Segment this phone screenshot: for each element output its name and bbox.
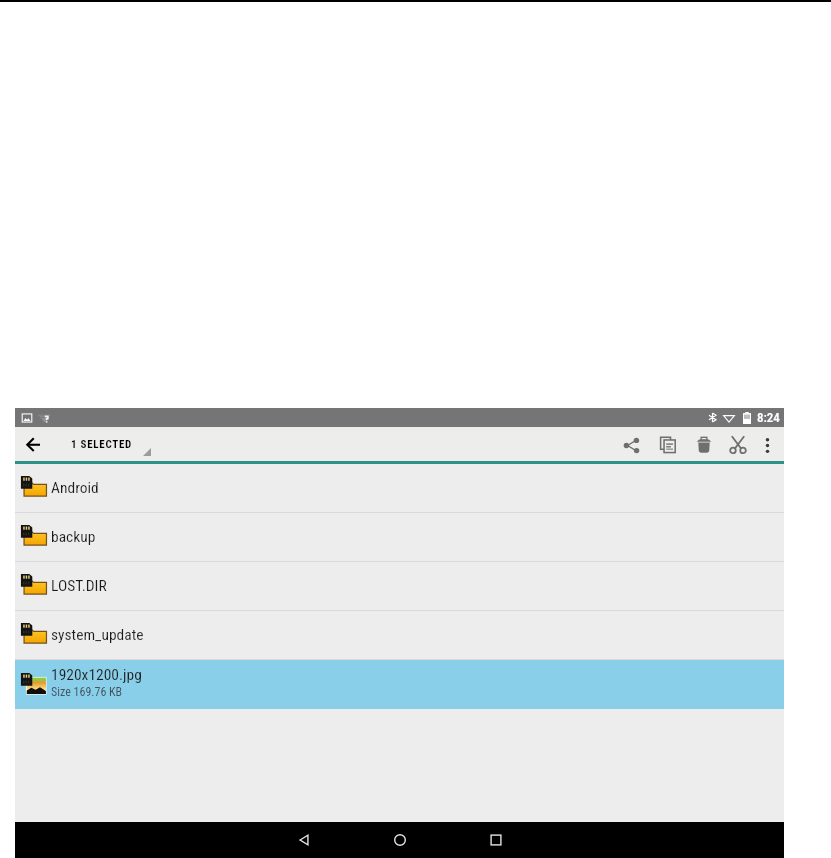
staticText: 1920x1200.jpg [51,666,142,684]
button[interactable]: Share [613,427,650,461]
button[interactable]: Back [280,822,328,858]
button[interactable]: Android [15,464,784,512]
button[interactable]: Delete [686,427,722,461]
button[interactable]: Recents [472,822,520,858]
button[interactable]: backup [15,513,784,561]
button[interactable]: LOST.DIR [15,562,784,610]
button[interactable]: Back [15,427,52,461]
button[interactable]: 1 SELECTED [71,430,151,458]
button[interactable]: Copy [650,427,686,461]
staticText: system_update [51,626,144,644]
staticText: Size 169.76 KB [51,685,123,699]
button[interactable]: Home [376,822,424,858]
button[interactable]: 1920x1200.jpg [15,660,784,709]
button[interactable]: More options [754,427,784,461]
staticText: Android [51,479,99,497]
staticText: backup [51,528,96,546]
staticText: 1 SELECTED [71,438,132,451]
staticText: LOST.DIR [51,577,107,595]
button[interactable]: system_update [15,611,784,659]
staticText: 8:24 [757,410,780,425]
button[interactable]: Cut [722,427,754,461]
